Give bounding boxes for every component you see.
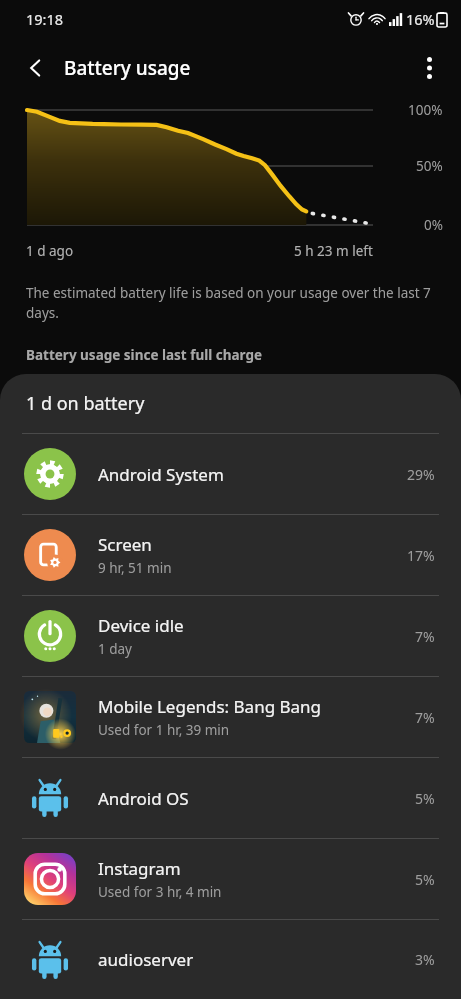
- button[interactable]: Device idle: [0, 596, 461, 676]
- staticText: Used for 3 hr, 4 min: [98, 883, 222, 901]
- staticText: 1 day: [98, 640, 132, 658]
- staticText: 50%: [416, 157, 443, 175]
- button[interactable]: audioserver: [0, 920, 461, 999]
- button[interactable]: Instagram: [0, 839, 461, 919]
- staticText: Android OS: [98, 787, 189, 810]
- staticText: 7%: [415, 627, 435, 646]
- staticText: 29%: [407, 465, 435, 484]
- staticText: Screen: [98, 533, 152, 556]
- staticText: 5%: [415, 870, 435, 889]
- staticText: 9 hr, 51 min: [98, 559, 172, 577]
- staticText: 0%: [424, 216, 443, 234]
- staticText: Mobile Legends: Bang Bang: [98, 695, 322, 718]
- staticText: 100%: [408, 101, 443, 119]
- staticText: 1 d on battery: [26, 391, 145, 416]
- staticText: 7%: [415, 708, 435, 727]
- button[interactable]: Screen: [0, 515, 461, 595]
- staticText: Android System: [98, 463, 224, 486]
- button[interactable]: Android System: [0, 434, 461, 514]
- staticText: audioserver: [98, 948, 194, 971]
- staticText: Device idle: [98, 614, 184, 637]
- staticText: Battery usage since last full charge: [26, 346, 263, 364]
- staticText: 17%: [407, 546, 435, 565]
- staticText: Used for 1 hr, 39 min: [98, 721, 230, 739]
- staticText: 5 h 23 m left: [294, 242, 373, 260]
- button[interactable]: More options: [407, 46, 451, 90]
- button[interactable]: Mobile Legends: Bang Bang: [0, 677, 461, 757]
- button[interactable]: Android OS: [0, 758, 461, 838]
- staticText: 3%: [415, 950, 435, 969]
- button[interactable]: Back: [14, 46, 58, 90]
- staticText: 1 d ago: [26, 242, 74, 260]
- staticText: 16%: [406, 9, 435, 29]
- staticText: The estimated battery life is based on y…: [26, 284, 435, 322]
- staticText: 19:18: [26, 9, 64, 29]
- staticText: Battery usage: [64, 55, 191, 81]
- staticText: Instagram: [98, 857, 181, 880]
- staticText: 5%: [415, 789, 435, 808]
